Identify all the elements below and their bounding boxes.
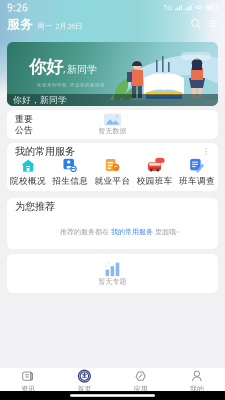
staticText: 我的常用服务: [15, 145, 75, 158]
staticText: 我的: [190, 385, 204, 393]
staticText: 周一 2月26日: [37, 21, 83, 31]
staticText: 为您推荐: [15, 200, 55, 213]
staticText: 招生信息: [52, 176, 88, 186]
staticText: 院校概况: [10, 176, 46, 186]
button[interactable]: 我的常用服务: [111, 227, 153, 236]
staticText: 重要 公告: [15, 113, 33, 136]
button[interactable]: 更多服务: [202, 146, 210, 156]
staticText: 推荐的服务都在: [60, 227, 111, 236]
staticText: ,: [63, 61, 66, 76]
staticText: 我的常用服务: [111, 227, 153, 236]
staticText: 5G: [163, 3, 172, 12]
button[interactable]: 应用: [112, 368, 169, 391]
button[interactable]: 首页: [56, 368, 112, 391]
staticText: 9:26: [7, 1, 28, 14]
staticText: 你好: [29, 56, 63, 78]
staticText: 欢迎来到学校 · 开启你的新旅程: [37, 82, 105, 88]
staticText: 校园班车: [137, 176, 173, 186]
button[interactable]: 就业平台: [91, 160, 134, 185]
staticText: 里面哦~: [153, 227, 180, 237]
staticText: 应用: [134, 385, 148, 393]
staticText: 新同学: [67, 63, 97, 76]
staticText: 就业平台: [94, 176, 130, 186]
staticText: 服务: [7, 16, 33, 32]
staticText: 班车调查: [179, 176, 215, 186]
button[interactable]: 搜索: [191, 19, 201, 29]
staticText: 首页: [77, 385, 91, 393]
staticText: 暂无专题: [98, 277, 126, 286]
button[interactable]: 资讯: [0, 368, 56, 391]
button[interactable]: 班车调查: [176, 160, 218, 185]
button[interactable]: 招生信息: [49, 160, 91, 185]
button[interactable]: 我的: [169, 368, 225, 391]
staticText: 暂无数据: [98, 127, 126, 135]
button[interactable]: 你好: [7, 42, 218, 106]
staticText: 你好，新同学: [13, 94, 67, 106]
button[interactable]: 更多: [208, 19, 218, 29]
staticText: 资讯: [21, 385, 35, 393]
button[interactable]: 校园班车: [134, 160, 176, 185]
button[interactable]: 院校概况: [7, 160, 49, 185]
